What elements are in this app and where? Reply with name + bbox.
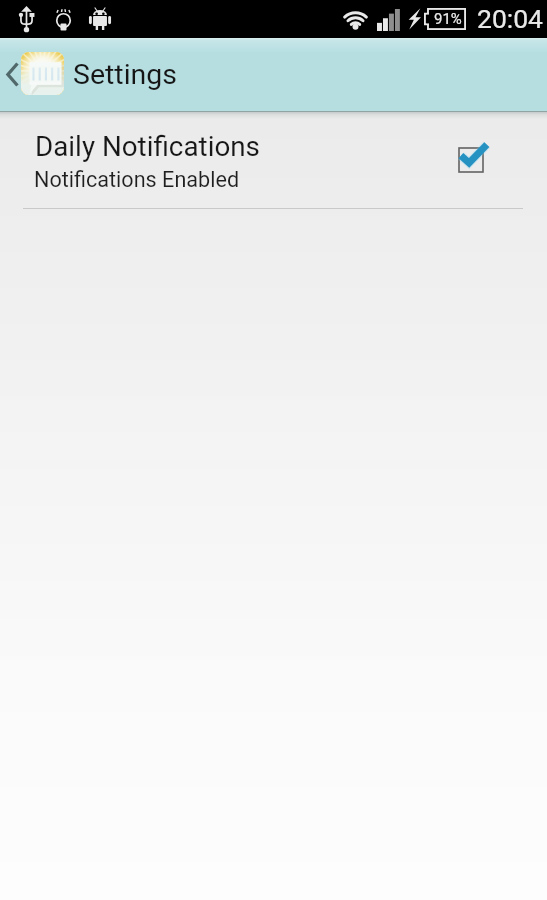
other: Back bbox=[7, 63, 18, 86]
button[interactable]: Navigate up bbox=[0, 38, 200, 111]
staticText: Daily Notifications bbox=[35, 130, 260, 163]
staticText: 20:04 bbox=[477, 3, 543, 34]
button[interactable]: Daily Notifications bbox=[0, 112, 547, 208]
staticText: Settings bbox=[73, 58, 178, 91]
other: Daily notifications toggle bbox=[452, 141, 492, 181]
staticText: Notifications Enabled bbox=[34, 167, 240, 192]
staticText: 91% bbox=[434, 10, 462, 28]
